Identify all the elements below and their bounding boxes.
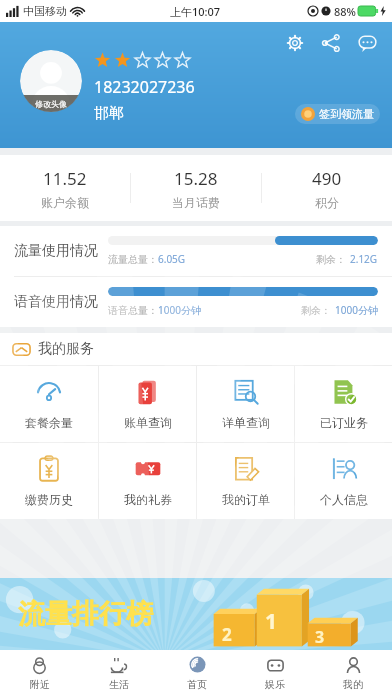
staticText: 首页 (187, 678, 207, 691)
staticText: 2 (222, 623, 232, 646)
staticText: 套餐余量 (25, 415, 73, 430)
button[interactable]: 流量使用情况 (0, 226, 392, 276)
staticText: 1000分钟 (158, 303, 201, 317)
button[interactable]: 详单查询 (197, 366, 294, 442)
staticText: 我的订单 (222, 492, 270, 507)
button[interactable]: 我的 (314, 650, 392, 696)
staticText: 88% (334, 4, 356, 19)
staticText: 我的 (343, 678, 363, 691)
staticText: 3 (315, 626, 325, 648)
staticText: 剩余： (301, 304, 331, 317)
button[interactable]: 套餐余量 (0, 366, 98, 442)
staticText: 15.28 (174, 167, 218, 190)
staticText: 我的服务 (38, 340, 94, 358)
button[interactable]: 个人信息 (295, 443, 392, 519)
button[interactable]: 附近 (0, 650, 79, 696)
button[interactable]: 我的订单 (197, 443, 294, 519)
button[interactable]: 缴费历史 (0, 443, 98, 519)
staticText: 中国移动 (23, 4, 67, 18)
button[interactable]: 语音使用情况 (0, 277, 392, 327)
staticText: 积分 (315, 195, 339, 210)
staticText: 18232027236 (94, 76, 195, 98)
button[interactable]: 修改头像 (20, 50, 82, 112)
button[interactable]: 首页 (158, 650, 236, 696)
staticText: 我的礼券 (124, 492, 172, 507)
staticText: 缴费历史 (25, 492, 73, 507)
button[interactable]: 娱乐 (236, 650, 314, 696)
staticText: 详单查询 (222, 415, 270, 430)
button[interactable]: 11.52 (0, 155, 130, 221)
staticText: 流量总量： (108, 253, 158, 266)
staticText: 1000分钟 (335, 303, 378, 317)
staticText: 个人信息 (320, 492, 368, 507)
staticText: 账单查询 (124, 415, 172, 430)
staticText: 已订业务 (320, 415, 368, 430)
staticText: 语音使用情况 (14, 293, 98, 311)
button[interactable]: 账单查询 (99, 366, 196, 442)
button[interactable]: Share (316, 28, 346, 58)
staticText: 11.52 (43, 167, 87, 190)
button[interactable]: 流量排行榜 (0, 578, 392, 650)
button[interactable]: Settings (280, 28, 310, 58)
staticText: 上午10:07 (170, 4, 221, 19)
staticText: 签到领流量 (319, 107, 374, 121)
button[interactable]: 15.28 (131, 155, 261, 221)
staticText: 当月话费 (172, 195, 220, 210)
button[interactable]: Messages (352, 28, 382, 58)
staticText: 6.05G (158, 252, 186, 266)
staticText: 1 (265, 607, 278, 636)
staticText: 修改头像 (35, 99, 67, 109)
staticText: 语音总量： (108, 304, 158, 317)
staticText: 2.12G (350, 252, 378, 266)
staticText: 账户余额 (41, 195, 89, 210)
staticText: 流量排行榜 (18, 597, 153, 631)
staticText: 生活 (109, 678, 129, 691)
button[interactable]: 我的礼券 (99, 443, 196, 519)
staticText: 娱乐 (265, 678, 285, 691)
staticText: 剩余： (316, 253, 346, 266)
staticText: 附近 (30, 678, 50, 691)
staticText: 490 (312, 167, 342, 190)
button[interactable]: 已订业务 (295, 366, 392, 442)
staticText: 邯郸 (94, 104, 124, 123)
button[interactable]: 签到领流量 (295, 104, 380, 124)
button[interactable]: 生活 (79, 650, 158, 696)
staticText: 流量使用情况 (14, 242, 98, 260)
button[interactable]: 490 (262, 155, 392, 221)
